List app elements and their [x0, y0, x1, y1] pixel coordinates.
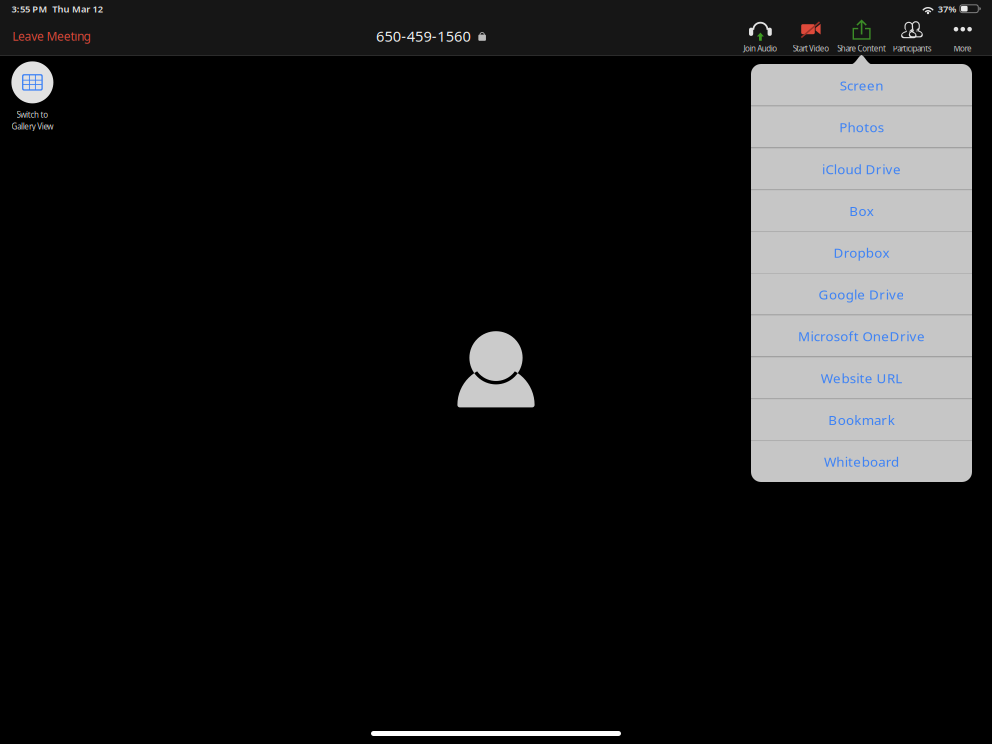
staticText: More — [953, 43, 972, 54]
button[interactable]: iCloud Drive — [751, 148, 972, 189]
button[interactable]: Share Content — [836, 13, 887, 57]
button[interactable]: Dropbox — [751, 231, 972, 273]
staticText: iCloud Drive — [822, 160, 901, 178]
button[interactable]: Switch to — [0, 58, 70, 134]
staticText: Microsoft OneDrive — [798, 327, 925, 345]
button[interactable]: Participants — [887, 13, 937, 57]
staticText: Start Video — [793, 43, 829, 54]
staticText: 650-459-1560 — [376, 26, 470, 46]
staticText: Bookmark — [828, 411, 895, 429]
staticText: Switch to — [17, 109, 48, 120]
staticText: Thu Mar 12 — [52, 3, 103, 15]
staticText: Photos — [839, 118, 884, 136]
button[interactable]: Bookmark — [751, 398, 972, 440]
staticText: Google Drive — [819, 285, 904, 303]
button[interactable]: Microsoft OneDrive — [751, 315, 972, 357]
button[interactable]: Start Video — [786, 13, 836, 57]
button[interactable]: Website URL — [751, 357, 972, 398]
staticText: 3:55 PM — [12, 3, 47, 15]
staticText: Screen — [840, 76, 883, 94]
staticText: Dropbox — [833, 244, 890, 261]
button[interactable]: Screen — [751, 64, 972, 106]
staticText: Leave Meeting — [12, 28, 91, 44]
button[interactable]: Join Audio — [735, 13, 786, 57]
button[interactable]: Box — [751, 189, 972, 231]
button[interactable]: Whiteboard — [751, 440, 972, 482]
button[interactable]: More — [937, 13, 988, 57]
staticText: Gallery View — [11, 121, 53, 132]
staticText: Whiteboard — [824, 453, 899, 470]
staticText: Box — [849, 202, 874, 220]
button[interactable]: Photos — [751, 106, 972, 148]
staticText: Participants — [893, 43, 932, 54]
staticText: Share Content — [837, 43, 886, 54]
button[interactable]: Google Drive — [751, 273, 972, 315]
button[interactable]: Leave Meeting — [6, 20, 96, 52]
staticText: Join Audio — [743, 43, 777, 54]
staticText: 37% — [938, 3, 956, 15]
staticText: Website URL — [821, 369, 902, 387]
